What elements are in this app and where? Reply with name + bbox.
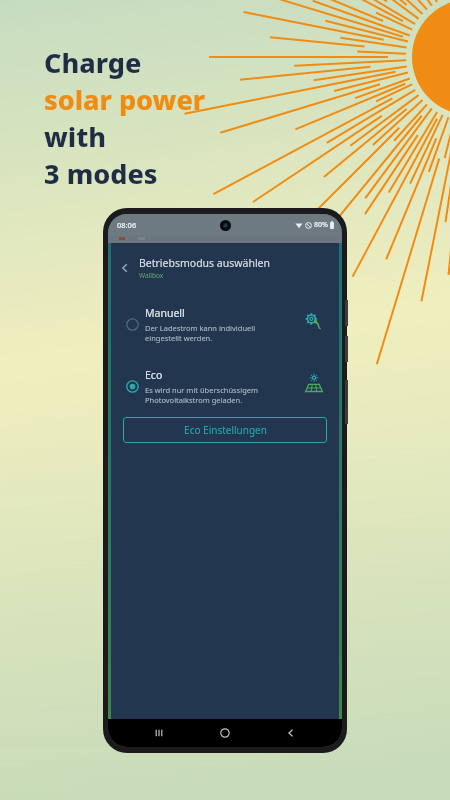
- button[interactable]: Eco: [111, 367, 339, 405]
- staticText: Der Ladestrom kann individuell: [145, 323, 256, 333]
- button[interactable]: Zurück: [111, 254, 139, 282]
- staticText: eingestellt werden.: [145, 333, 213, 343]
- staticText: Es wird nur mit überschüssigem: [145, 385, 258, 395]
- staticText: Eco: [145, 368, 163, 382]
- staticText: Eco Einstellungen: [184, 423, 267, 437]
- staticText: 3 modes: [44, 155, 158, 192]
- staticText: Betriebsmodus auswählen: [139, 256, 271, 270]
- button[interactable]: Zurück: [276, 719, 306, 747]
- staticText: solar power: [44, 81, 206, 118]
- staticText: 08:06: [117, 220, 137, 230]
- button[interactable]: Eco Einstellungen: [123, 417, 327, 443]
- staticText: Photovoltaikstrom geladen.: [145, 395, 243, 405]
- staticText: Wallbox: [139, 271, 164, 280]
- button[interactable]: Letzte Apps: [144, 719, 174, 747]
- button[interactable]: Startseite: [210, 719, 240, 747]
- button[interactable]: Manuell: [111, 305, 339, 343]
- staticText: 80%: [314, 220, 328, 230]
- staticText: Charge: [44, 44, 142, 81]
- staticText: with: [44, 118, 107, 155]
- staticText: Manuell: [145, 306, 185, 320]
